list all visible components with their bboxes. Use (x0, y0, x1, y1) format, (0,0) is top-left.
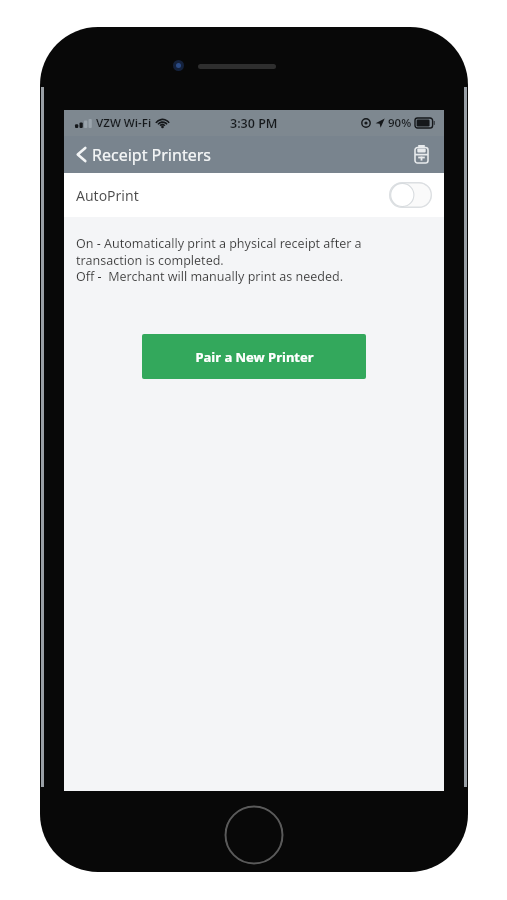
button[interactable]: Home (224, 805, 284, 865)
staticText: VZW Wi-Fi (96, 115, 152, 131)
staticText: 3:30 PM (230, 115, 278, 132)
button[interactable]: Printer settings (406, 140, 436, 170)
button[interactable]: Receipt Printers (64, 136, 221, 173)
staticText: 90% (388, 115, 412, 131)
button[interactable]: AutoPrint toggle (389, 182, 432, 208)
staticText: On - Automatically print a physical rece… (76, 235, 430, 268)
staticText: Pair a New Printer (195, 348, 314, 366)
staticText: Receipt Printers (92, 144, 211, 166)
button[interactable]: AutoPrint (64, 173, 444, 217)
button[interactable]: Pair a New Printer (142, 334, 366, 379)
staticText: Off - Merchant will manually print as ne… (76, 268, 344, 285)
staticText: AutoPrint (76, 186, 139, 205)
